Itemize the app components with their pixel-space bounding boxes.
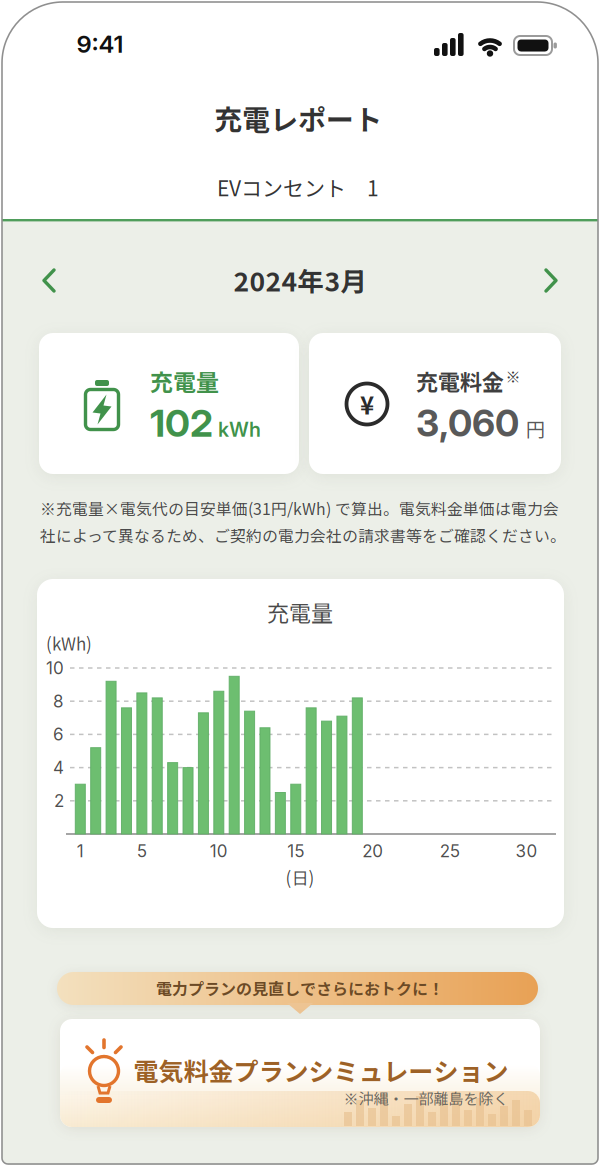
staticText: 10 [46,658,64,678]
button[interactable] [27,258,71,302]
staticText: 充電レポート [214,98,382,138]
staticText: ※ [505,365,520,387]
staticText: 20 [362,841,383,861]
staticText: 102 [150,400,213,446]
staticText: 2024年3月 [233,261,367,299]
staticText: 3,060 [416,401,519,445]
button[interactable]: 電気料金プランシミュレーション [60,1019,540,1127]
staticText: EVコンセント 1 [217,172,379,202]
staticText: ※充電量×電気代の目安単価(31円/kWh) で算出。電気料金単価は電力会 [40,497,559,519]
staticText: 充電量 [150,364,219,398]
staticText: 充電量 [267,596,333,628]
staticText: ¥ [360,387,374,421]
staticText: 4 [53,757,64,778]
staticText: 電力プランの見直しでさらにおトクに！ [156,976,444,1000]
staticText: 電気料金プランシミュレーション [133,1052,508,1088]
staticText: ※沖縄・一部離島を除く [343,1087,508,1109]
button[interactable] [529,258,573,302]
staticText: 30 [516,841,538,861]
staticText: 8 [53,691,64,711]
staticText: 9:41 [76,29,123,58]
staticText: 10 [210,841,228,861]
staticText: 円 [526,414,545,442]
staticText: 充電料金 [416,365,504,397]
staticText: 25 [440,841,460,861]
staticText: (kWh) [46,631,92,655]
staticText: 社によって異なるため、ご契約の電力会社の請求書等をご確認ください。 [40,524,566,546]
staticText: 5 [137,841,147,861]
staticText: 2 [54,790,64,811]
staticText: 6 [53,724,64,745]
staticText: 1 [77,841,84,861]
staticText: 15 [287,841,304,861]
staticText: (日) [285,865,314,889]
staticText: kWh [218,418,261,441]
